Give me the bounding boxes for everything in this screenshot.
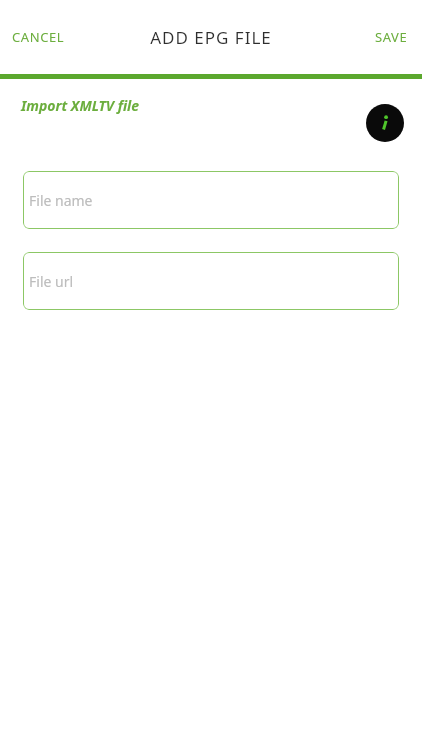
button[interactable]: CANCEL xyxy=(0,18,77,56)
staticText: ADD EPG FILE xyxy=(150,26,272,49)
staticText: File name xyxy=(29,191,93,210)
staticText: CANCEL xyxy=(12,28,65,46)
staticText: File url xyxy=(29,272,74,291)
button[interactable]: File name xyxy=(23,171,399,229)
button[interactable]: Information xyxy=(366,104,404,142)
button[interactable]: SAVE xyxy=(361,18,422,56)
staticText: Import XMLTV file xyxy=(21,96,140,115)
button[interactable]: File url xyxy=(23,252,399,310)
staticText: SAVE xyxy=(375,28,408,46)
